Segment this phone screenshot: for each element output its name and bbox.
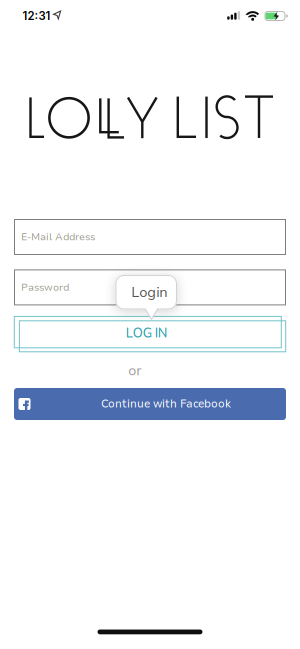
textField[interactable]: E-Mail Address [21, 230, 286, 244]
staticText: Password [21, 281, 69, 294]
secureTextField[interactable]: Password [21, 281, 286, 294]
button[interactable]: LOG IN [14, 316, 286, 352]
staticText: E-Mail Address [21, 230, 95, 244]
button[interactable]: Continue with Facebook [14, 388, 286, 420]
staticText: 12:31 [22, 9, 50, 23]
staticText: or [128, 361, 141, 380]
staticText: Login [131, 283, 167, 302]
staticText: Continue with Facebook [101, 396, 231, 411]
staticText: LOG IN [126, 324, 168, 342]
